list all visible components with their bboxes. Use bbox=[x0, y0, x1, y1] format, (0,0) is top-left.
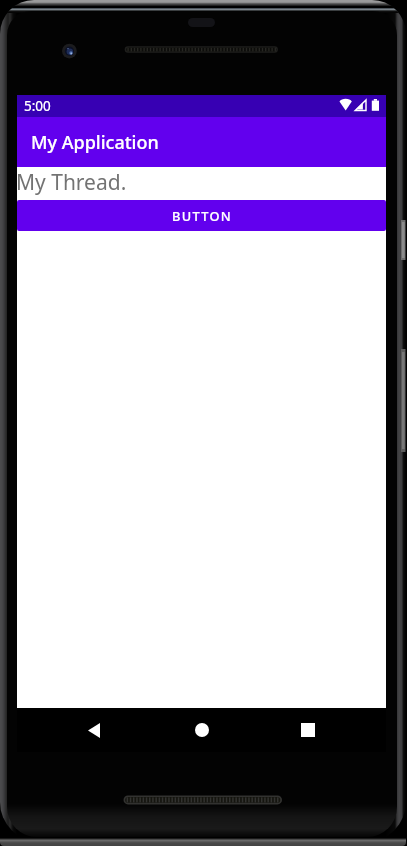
staticText: My Application bbox=[31, 130, 159, 155]
staticText: 5:00 bbox=[24, 97, 51, 115]
button[interactable]: Back bbox=[72, 708, 116, 752]
button[interactable]: BUTTON bbox=[17, 200, 386, 231]
button[interactable]: Home bbox=[179, 708, 224, 752]
staticText: My Thread. bbox=[16, 168, 127, 197]
staticText: BUTTON bbox=[172, 207, 232, 224]
button[interactable]: Recent apps bbox=[285, 708, 330, 752]
